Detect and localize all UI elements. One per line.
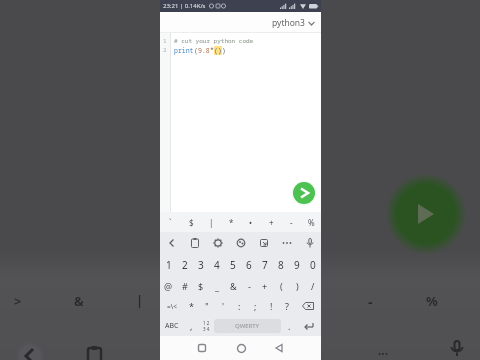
button[interactable]: 9 [289,254,305,275]
staticText: | [209,217,214,228]
button[interactable]: ! [263,296,279,316]
button[interactable]: # [177,275,193,296]
button[interactable] [275,232,298,254]
button[interactable]: ABC [160,316,184,336]
staticText: # [182,280,188,292]
button[interactable] [298,232,321,254]
staticText: 1 2 [203,320,210,326]
staticText: () [214,46,222,55]
button[interactable]: =\< [160,296,184,316]
staticText: ABC [165,321,179,331]
button[interactable]: * [221,212,241,232]
button[interactable]: ` [160,212,181,232]
staticText: ... [378,342,389,358]
button[interactable]: % [301,212,321,232]
staticText: 23:21 | 0.14K/s [163,2,206,10]
staticText: ' [222,300,225,312]
staticText: - [248,280,251,292]
button[interactable]: QWERTY [214,319,281,333]
staticText: QWERTY [235,322,260,330]
button[interactable]: python3 [272,17,315,29]
button[interactable]: 7 [257,254,273,275]
button[interactable]: ? [279,296,295,316]
button[interactable]: 3 [193,254,209,275]
button[interactable]: | [201,212,221,232]
staticText: python3 [272,17,305,29]
button[interactable] [194,340,210,356]
staticText: . [288,320,291,332]
staticText: 3 4 [203,326,210,332]
staticText: & [74,292,84,310]
button[interactable]: • [241,212,261,232]
button[interactable] [293,182,315,204]
button[interactable]: , [184,316,198,336]
button[interactable]: 2 [177,254,193,275]
staticText: + [269,217,274,228]
staticText: 0 [310,258,316,272]
staticText: 7 [262,258,268,272]
staticText: 4 [214,258,220,272]
staticText: 2 [163,46,167,54]
button[interactable]: " [199,296,215,316]
button[interactable]: 8 [273,254,289,275]
button[interactable]: - [241,275,257,296]
button[interactable]: 1 [160,254,177,275]
button[interactable]: 5 [225,254,241,275]
staticText: 9.8 [198,46,210,55]
staticText: ( [280,280,283,292]
button[interactable] [160,232,183,254]
staticText: * [229,217,234,228]
button[interactable]: * [184,296,199,316]
button[interactable]: - [281,212,301,232]
staticText: - [368,292,373,311]
button[interactable] [252,232,275,254]
button[interactable]: @ [160,275,177,296]
button[interactable]: $ [181,212,201,232]
button[interactable] [206,232,229,254]
staticText: ) [296,280,299,292]
button[interactable]: + [257,275,273,296]
button[interactable] [183,232,206,254]
staticText: * [189,300,194,312]
button[interactable] [271,340,287,356]
button[interactable]: 6 [241,254,257,275]
staticText: 5 [230,258,236,272]
staticText: _ [215,280,219,292]
button[interactable] [233,340,249,356]
button[interactable]: ' [215,296,231,316]
button[interactable]: 0 [305,254,321,275]
staticText: ( [194,46,198,55]
staticText: ) [222,46,226,55]
staticText: % [308,217,315,228]
staticText: 8 [278,258,284,272]
button[interactable]: ( [273,275,289,296]
button[interactable]: _ [209,275,225,296]
button[interactable]: / [305,275,321,296]
staticText: =\< [167,302,177,311]
staticText: & [230,280,237,292]
staticText: > [14,292,22,310]
button[interactable]: + [261,212,281,232]
button[interactable]: 1 2 [198,316,214,336]
staticText: - [290,217,293,228]
button[interactable]: $ [193,275,209,296]
staticText: print [174,46,194,55]
button[interactable]: . [281,316,297,336]
staticText: # cut your python code [174,37,254,45]
button[interactable]: 4 [209,254,225,275]
staticText: 3 [198,258,204,272]
staticText: * [210,46,214,55]
button[interactable] [297,316,321,336]
button[interactable]: & [225,275,241,296]
staticText: 6 [246,258,252,272]
button[interactable]: : [231,296,247,316]
button[interactable]: ) [289,275,305,296]
staticText: + [262,280,268,292]
button[interactable] [229,232,252,254]
staticText: $ [198,280,204,292]
staticText: • [249,217,253,228]
button[interactable] [295,296,321,316]
staticText: ? [285,300,289,312]
button[interactable]: ; [247,296,263,316]
staticText: $ [189,217,194,228]
